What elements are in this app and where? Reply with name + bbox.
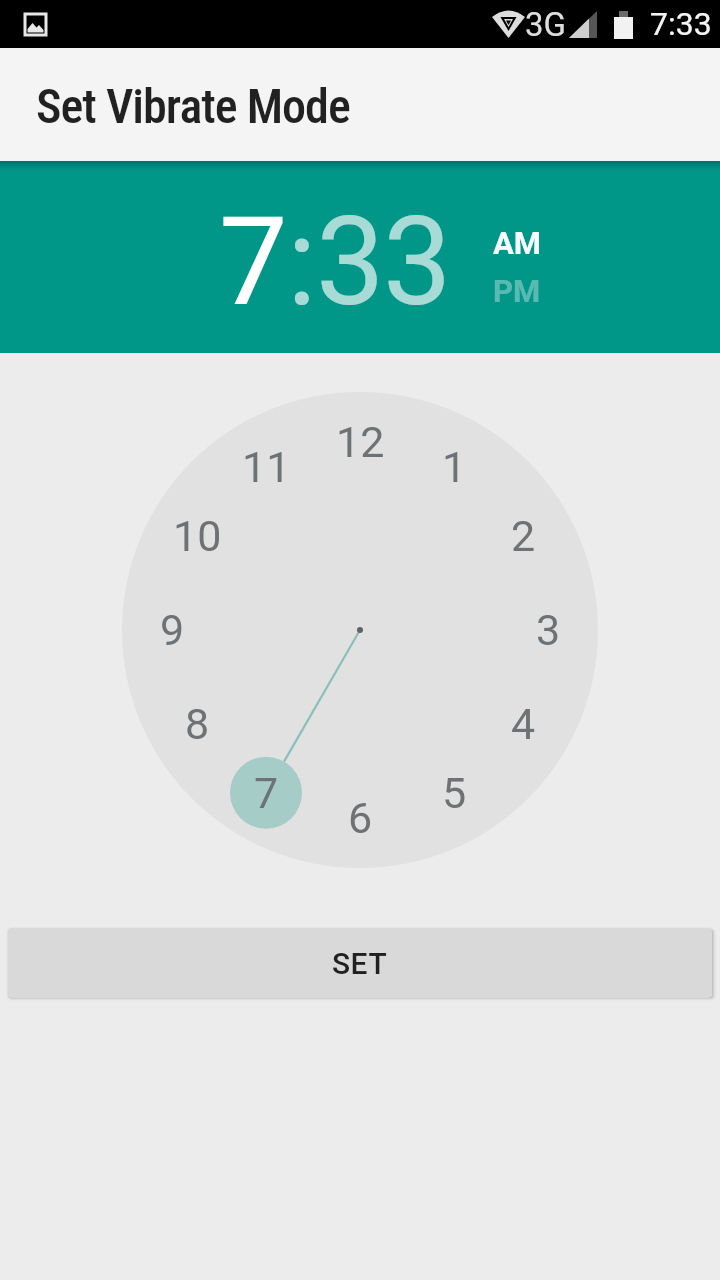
staticText: 2 [511,511,536,561]
button[interactable]: 7 [238,765,294,821]
button[interactable]: 9 [144,602,200,658]
staticText: 10 [173,511,222,561]
button[interactable]: 1 [426,439,482,495]
staticText: SET [332,946,388,981]
button[interactable]: 3 [520,602,576,658]
button[interactable]: 5 [426,765,482,821]
staticText: 8 [185,699,210,749]
button[interactable]: 6 [332,790,388,846]
staticText: 3 [536,605,561,655]
staticText: 7:33 [650,5,712,43]
button[interactable]: 33 [316,191,451,334]
staticText: 11 [242,442,291,492]
staticText: 12 [336,417,385,467]
button[interactable]: 8 [169,696,225,752]
button[interactable]: PM [493,273,541,309]
staticText: 1 [442,442,467,492]
staticText: : [287,191,316,334]
staticText: 33 [316,191,451,334]
button[interactable]: 10 [169,508,225,564]
staticText: 7 [254,768,279,818]
button[interactable]: 12 [332,414,388,470]
button[interactable]: SET [8,928,712,998]
staticText: 5 [442,768,467,818]
button[interactable]: 11 [238,439,294,495]
button[interactable]: AM [493,225,542,261]
staticText: 6 [348,793,373,843]
button[interactable]: 4 [495,696,551,752]
staticText: 9 [160,605,185,655]
staticText: AM [493,225,542,261]
staticText: 4 [511,699,536,749]
button[interactable]: 2 [495,508,551,564]
button[interactable]: 7 [219,191,287,334]
staticText: Set Vibrate Mode [36,78,350,134]
staticText: 7 [219,191,287,334]
staticText: 3G [525,5,567,44]
staticText: PM [493,273,541,309]
